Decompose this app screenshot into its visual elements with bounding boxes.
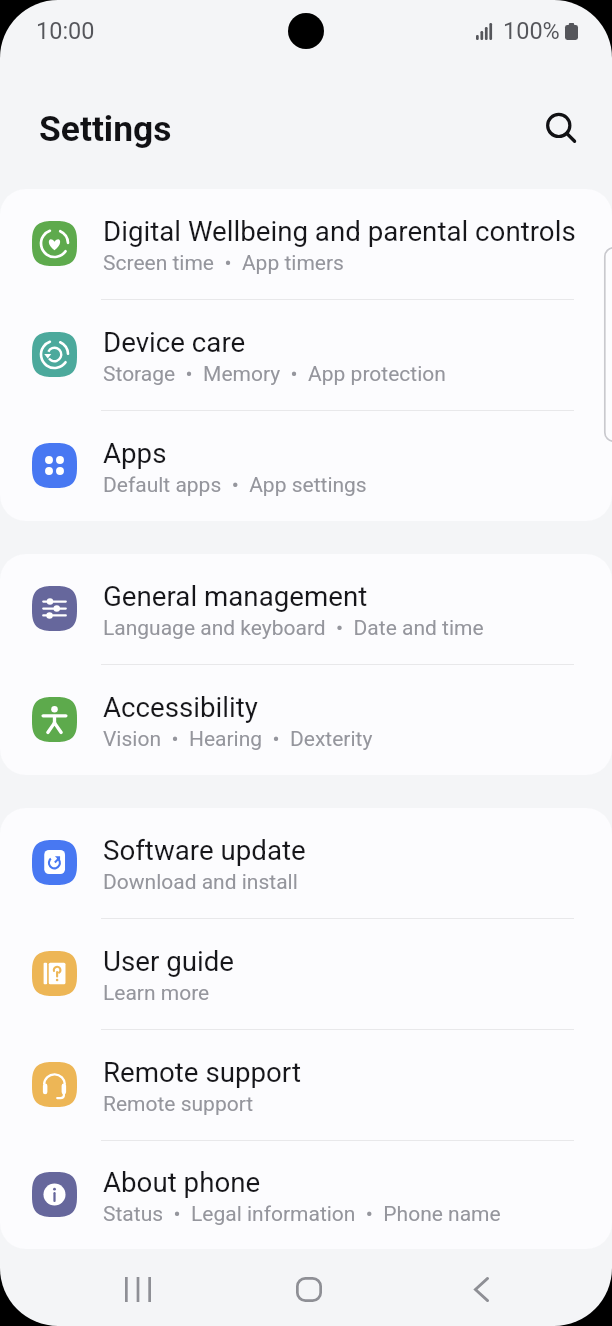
staticText: Apps bbox=[103, 437, 167, 469]
button[interactable]: About phone bbox=[0, 1141, 612, 1249]
button[interactable]: User guide bbox=[0, 919, 612, 1029]
staticText: Accessibility bbox=[103, 691, 258, 723]
button[interactable]: Software update bbox=[0, 808, 612, 918]
staticText: Status • Legal information • Phone name bbox=[103, 1202, 501, 1227]
button[interactable]: Digital Wellbeing and parental controls bbox=[0, 189, 612, 299]
staticText: 100% bbox=[503, 17, 560, 45]
staticText: Learn more bbox=[103, 981, 210, 1006]
staticText: Vision • Hearing • Dexterity bbox=[103, 727, 373, 752]
staticText: Download and install bbox=[103, 870, 298, 895]
button[interactable]: Back bbox=[436, 1251, 526, 1326]
staticText: Device care bbox=[103, 326, 246, 358]
staticText: Storage • Memory • App protection bbox=[103, 362, 446, 387]
staticText: User guide bbox=[103, 945, 235, 977]
button[interactable]: Home bbox=[264, 1251, 354, 1326]
button[interactable]: Remote support bbox=[0, 1030, 612, 1140]
button[interactable]: Search bbox=[534, 101, 590, 157]
staticText: Remote support bbox=[103, 1092, 254, 1117]
button[interactable]: Recent apps bbox=[93, 1251, 183, 1326]
staticText: General management bbox=[103, 580, 368, 612]
staticText: Default apps • App settings bbox=[103, 473, 367, 498]
button[interactable]: Apps bbox=[0, 411, 612, 521]
staticText: Remote support bbox=[103, 1056, 301, 1088]
button[interactable]: General management bbox=[0, 554, 612, 664]
staticText: 10:00 bbox=[36, 17, 95, 45]
staticText: Software update bbox=[103, 834, 306, 866]
staticText: About phone bbox=[103, 1166, 261, 1198]
button[interactable]: Device care bbox=[0, 300, 612, 410]
staticText: Settings bbox=[39, 108, 172, 149]
staticText: Screen time • App timers bbox=[103, 251, 344, 276]
staticText: Digital Wellbeing and parental controls bbox=[103, 215, 576, 247]
button[interactable]: Accessibility bbox=[0, 665, 612, 775]
staticText: Language and keyboard • Date and time bbox=[103, 616, 484, 641]
